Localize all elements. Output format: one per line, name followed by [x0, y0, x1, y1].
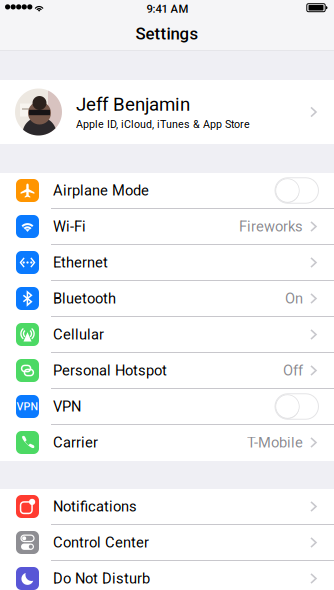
staticText: Off: [283, 362, 303, 379]
staticText: On: [285, 290, 303, 307]
staticText: T-Mobile: [247, 434, 303, 451]
button[interactable]: Cellular: [0, 317, 334, 353]
staticText: VPN: [53, 398, 81, 415]
button[interactable]: Airplane Mode: [0, 173, 334, 209]
button[interactable]: VPN: [0, 389, 334, 425]
staticText: Jeff Benjamin: [76, 93, 190, 115]
staticText: VPN: [16, 400, 38, 413]
staticText: Cellular: [53, 326, 104, 343]
staticText: Bluetooth: [53, 290, 116, 307]
button[interactable]: Ethernet: [0, 245, 334, 281]
button[interactable]: Control Center: [0, 525, 334, 561]
button[interactable]: Bluetooth: [0, 281, 334, 317]
staticText: Carrier: [53, 434, 98, 451]
staticText: Airplane Mode: [53, 182, 149, 199]
button[interactable]: Notifications: [0, 489, 334, 525]
button[interactable]: Wi-Fi: [0, 209, 334, 245]
staticText: Fireworks: [239, 218, 303, 235]
staticText: Do Not Disturb: [53, 570, 150, 587]
button[interactable]: Carrier: [0, 425, 334, 461]
staticText: Apple ID, iCloud, iTunes & App Store: [76, 118, 250, 131]
staticText: Personal Hotspot: [53, 362, 167, 379]
staticText: Control Center: [53, 534, 149, 551]
staticText: 9:41 AM: [146, 2, 188, 16]
staticText: Wi-Fi: [53, 218, 86, 235]
staticText: Notifications: [53, 498, 137, 515]
button[interactable]: Jeff Benjamin: [0, 80, 334, 144]
button[interactable]: Do Not Disturb: [0, 561, 334, 590]
button[interactable]: Personal Hotspot: [0, 353, 334, 389]
staticText: Settings: [135, 24, 198, 44]
staticText: Ethernet: [53, 254, 108, 271]
